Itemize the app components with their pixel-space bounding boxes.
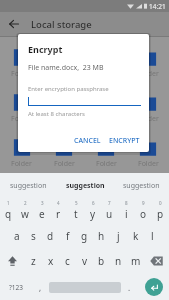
button[interactable]: Folder bbox=[85, 44, 127, 89]
button[interactable]: Folder bbox=[127, 44, 169, 89]
staticText: d bbox=[47, 229, 54, 243]
staticText: 1 bbox=[7, 200, 10, 206]
staticText: Folder bbox=[54, 69, 75, 79]
staticText: CANCEL bbox=[74, 136, 101, 146]
staticText: u bbox=[106, 207, 113, 221]
button[interactable]: CANCEL bbox=[70, 133, 105, 149]
button[interactable]: Folder bbox=[43, 44, 85, 89]
button[interactable]: z bbox=[25, 248, 42, 274]
button[interactable]: l bbox=[144, 223, 161, 248]
button[interactable]: 7 bbox=[101, 198, 118, 223]
staticText: r bbox=[56, 207, 61, 221]
staticText: a bbox=[14, 229, 20, 243]
button[interactable]: Shift bbox=[0, 248, 25, 274]
staticText: 2 bbox=[24, 200, 27, 206]
button[interactable]: 0 bbox=[152, 198, 169, 223]
staticText: t bbox=[74, 207, 78, 221]
staticText: 5 bbox=[75, 200, 78, 206]
staticText: i bbox=[125, 207, 128, 221]
button[interactable]: Folder bbox=[0, 134, 43, 174]
staticText: Folder bbox=[138, 114, 159, 124]
button[interactable]: b bbox=[93, 248, 110, 274]
button[interactable]: suggestion bbox=[57, 173, 113, 198]
button[interactable]: , bbox=[32, 274, 49, 300]
staticText: Encrypt bbox=[28, 43, 63, 55]
staticText: o bbox=[140, 207, 147, 221]
button[interactable]: Folder bbox=[0, 44, 43, 89]
staticText: ENCRYPT bbox=[109, 136, 140, 146]
button[interactable]: Folder bbox=[43, 89, 85, 134]
staticText: 0 bbox=[159, 200, 162, 206]
staticText: n bbox=[115, 254, 122, 268]
button[interactable]: f bbox=[59, 223, 76, 248]
staticText: j bbox=[117, 229, 120, 243]
staticText: 7 bbox=[108, 200, 111, 206]
button[interactable]: 3 bbox=[33, 198, 50, 223]
button[interactable]: Folder bbox=[85, 134, 127, 174]
staticText: 4 bbox=[57, 200, 60, 206]
staticText: Folder bbox=[11, 159, 32, 169]
staticText: Folder bbox=[138, 69, 159, 79]
staticText: suggestion bbox=[10, 181, 47, 191]
button[interactable]: 9 bbox=[135, 198, 152, 223]
button[interactable]: k bbox=[127, 223, 144, 248]
button[interactable]: Navigate up bbox=[0, 12, 27, 36]
button[interactable]: 2 bbox=[16, 198, 33, 223]
button[interactable]: 5 bbox=[67, 198, 84, 223]
button[interactable]: c bbox=[59, 248, 76, 274]
button[interactable]: a bbox=[8, 223, 25, 248]
button[interactable]: g bbox=[76, 223, 93, 248]
button[interactable]: Backspace bbox=[144, 248, 169, 274]
staticText: 8 bbox=[125, 200, 128, 206]
staticText: l bbox=[151, 229, 154, 243]
button[interactable]: ?123 bbox=[0, 274, 32, 300]
button[interactable]: Folder bbox=[0, 89, 43, 134]
button[interactable]: suggestion bbox=[0, 173, 57, 198]
staticText: Folder bbox=[54, 114, 75, 124]
staticText: Local storage bbox=[31, 18, 92, 31]
button[interactable]: 1 bbox=[0, 198, 16, 223]
button[interactable]: 4 bbox=[50, 198, 67, 223]
button[interactable]: Enter bbox=[145, 278, 163, 296]
staticText: . bbox=[128, 282, 131, 293]
staticText: g bbox=[81, 229, 88, 243]
button[interactable]: 8 bbox=[118, 198, 135, 223]
button[interactable]: v bbox=[76, 248, 93, 274]
button[interactable]: s bbox=[25, 223, 42, 248]
button[interactable]: 6 bbox=[84, 198, 101, 223]
staticText: ?123 bbox=[9, 283, 23, 292]
button[interactable]: Folder bbox=[43, 134, 85, 174]
staticText: 6 bbox=[92, 200, 95, 206]
button[interactable]: Folder bbox=[85, 89, 127, 134]
staticText: w bbox=[21, 207, 29, 221]
button[interactable]: n bbox=[110, 248, 127, 274]
staticText: v bbox=[82, 254, 88, 268]
button[interactable]: h bbox=[93, 223, 110, 248]
staticText: c bbox=[65, 254, 70, 268]
staticText: At least 8 characters bbox=[28, 110, 85, 118]
staticText: Folder bbox=[11, 69, 32, 79]
staticText: , bbox=[39, 282, 42, 293]
staticText: suggestion bbox=[66, 181, 105, 191]
staticText: Folder bbox=[96, 159, 117, 169]
button[interactable]: suggestion bbox=[113, 173, 169, 198]
button[interactable]: d bbox=[42, 223, 59, 248]
button[interactable]: x bbox=[42, 248, 59, 274]
button[interactable]: Folder bbox=[127, 89, 169, 134]
staticText: p bbox=[157, 207, 164, 221]
button[interactable]: ENCRYPT bbox=[105, 133, 144, 149]
staticText: b bbox=[98, 254, 105, 268]
staticText: Folder bbox=[96, 69, 117, 79]
button[interactable]: j bbox=[110, 223, 127, 248]
staticText: z bbox=[31, 254, 36, 268]
staticText: Folder bbox=[11, 114, 32, 124]
staticText: x bbox=[48, 254, 54, 268]
button[interactable]: m bbox=[127, 248, 144, 274]
staticText: Folder bbox=[138, 159, 159, 169]
staticText: Folder bbox=[54, 159, 75, 169]
button[interactable]: . bbox=[121, 274, 138, 300]
staticText: q bbox=[5, 207, 12, 221]
button[interactable]: Folder bbox=[127, 134, 169, 174]
staticText: 14:21 bbox=[149, 2, 166, 11]
